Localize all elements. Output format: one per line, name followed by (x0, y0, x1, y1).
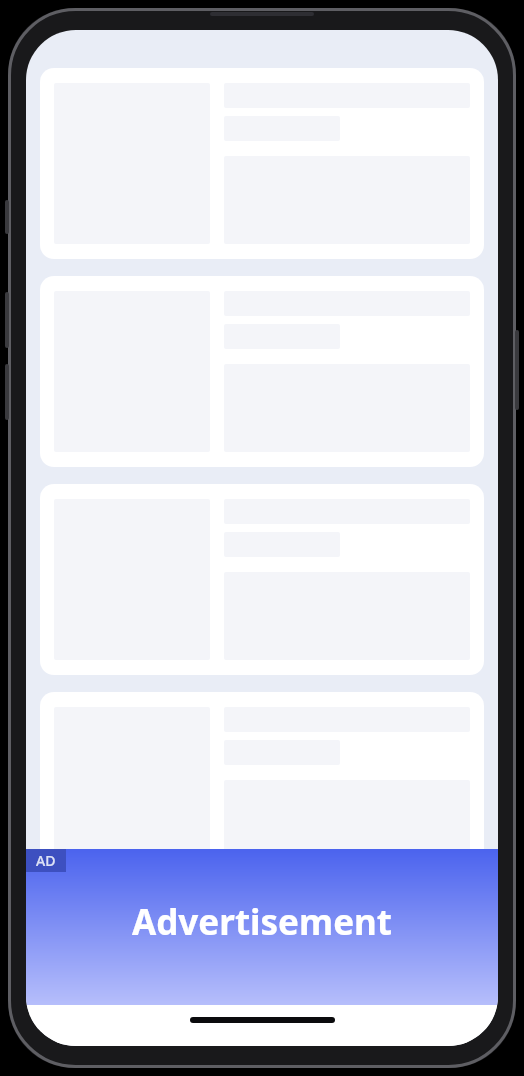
button[interactable] (40, 276, 484, 467)
staticText: Advertisement (132, 898, 392, 946)
button[interactable] (40, 484, 484, 675)
staticText: AD (36, 851, 56, 870)
button[interactable] (40, 692, 484, 883)
button[interactable] (40, 68, 484, 259)
button[interactable]: Advertisement (26, 849, 498, 1005)
other: Advertisement label (26, 849, 66, 872)
